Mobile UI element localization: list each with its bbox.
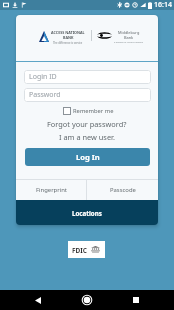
button[interactable]: Log In [25, 148, 150, 166]
button[interactable]: Back [23, 290, 53, 310]
button[interactable]: Password [24, 88, 151, 102]
button[interactable]: Login ID [24, 70, 151, 84]
staticText: Middleburg [118, 30, 140, 35]
staticText: Passcode [110, 186, 136, 194]
staticText: FDIC [72, 246, 88, 255]
button[interactable]: Remember me [63, 107, 114, 115]
button[interactable]: Locations [16, 200, 158, 225]
button[interactable]: Forgot your password? [47, 119, 127, 129]
staticText: Password [29, 90, 61, 100]
staticText: BANK [63, 35, 74, 40]
button[interactable]: Home [72, 290, 102, 310]
staticText: Fingerprint [36, 186, 67, 194]
staticText: Locations [72, 209, 102, 217]
staticText: 16:14 [154, 0, 172, 10]
staticText: The difference is service [53, 41, 83, 45]
staticText: Bank [124, 35, 134, 40]
staticText: ACCESS NATIONAL [51, 30, 85, 35]
button[interactable]: Recent apps [121, 290, 151, 310]
button[interactable]: Passcode [87, 180, 158, 200]
button[interactable]: Fingerprint [16, 180, 86, 200]
staticText: Remember me [73, 107, 114, 115]
staticText: a division of Access National [114, 41, 143, 44]
staticText: Log In [76, 152, 100, 162]
button[interactable]: I am a new user. [59, 132, 115, 142]
staticText: Login ID [29, 72, 57, 82]
